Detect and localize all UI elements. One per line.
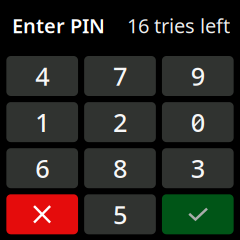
staticText: 6 <box>35 151 49 185</box>
button[interactable]: Cancel <box>6 194 78 234</box>
button[interactable]: 6 <box>6 148 78 188</box>
staticText: 5 <box>113 197 127 231</box>
button[interactable]: 1 <box>6 102 78 142</box>
staticText: 8 <box>113 151 127 185</box>
button[interactable]: 8 <box>84 148 156 188</box>
staticText: Enter PIN <box>12 12 105 39</box>
button[interactable]: 0 <box>162 102 234 142</box>
staticText: 1 <box>35 105 49 139</box>
button[interactable]: 2 <box>84 102 156 142</box>
staticText: 9 <box>191 59 205 93</box>
staticText: 7 <box>113 59 127 93</box>
staticText: 0 <box>191 105 205 139</box>
staticText: 16 tries left <box>127 12 230 39</box>
staticText: 3 <box>191 151 205 185</box>
button[interactable]: 9 <box>162 56 234 96</box>
button[interactable]: 7 <box>84 56 156 96</box>
button[interactable]: 3 <box>162 148 234 188</box>
staticText: 2 <box>113 105 127 139</box>
button[interactable]: Confirm <box>162 194 234 234</box>
button[interactable]: 4 <box>6 56 78 96</box>
button[interactable]: 5 <box>84 194 156 234</box>
staticText: 4 <box>35 59 49 93</box>
